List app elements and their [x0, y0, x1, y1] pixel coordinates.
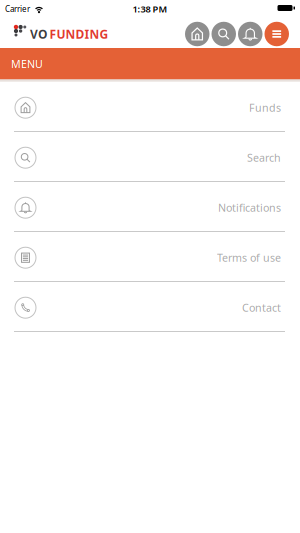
staticText: Search — [247, 151, 281, 165]
button[interactable]: Search — [0, 132, 300, 182]
button[interactable]: Home — [185, 22, 209, 46]
staticText: Terms of use — [217, 251, 281, 265]
staticText: FUNDING — [49, 26, 108, 42]
button[interactable]: Terms of use — [0, 232, 300, 282]
staticText: 1:38 PM — [132, 3, 167, 15]
staticText: MENU — [11, 57, 43, 71]
button[interactable]: Notifications — [0, 182, 300, 232]
staticText: Funds — [249, 101, 281, 115]
staticText: Carrier — [5, 4, 30, 14]
button[interactable]: Menu — [264, 22, 289, 46]
staticText: Contact — [242, 301, 281, 315]
button[interactable]: Search — [211, 22, 236, 46]
button[interactable]: Notifications — [238, 22, 262, 46]
staticText: VO — [30, 26, 47, 42]
staticText: Notifications — [218, 201, 281, 215]
button[interactable]: Contact — [0, 282, 300, 332]
button[interactable]: Funds — [0, 82, 300, 132]
